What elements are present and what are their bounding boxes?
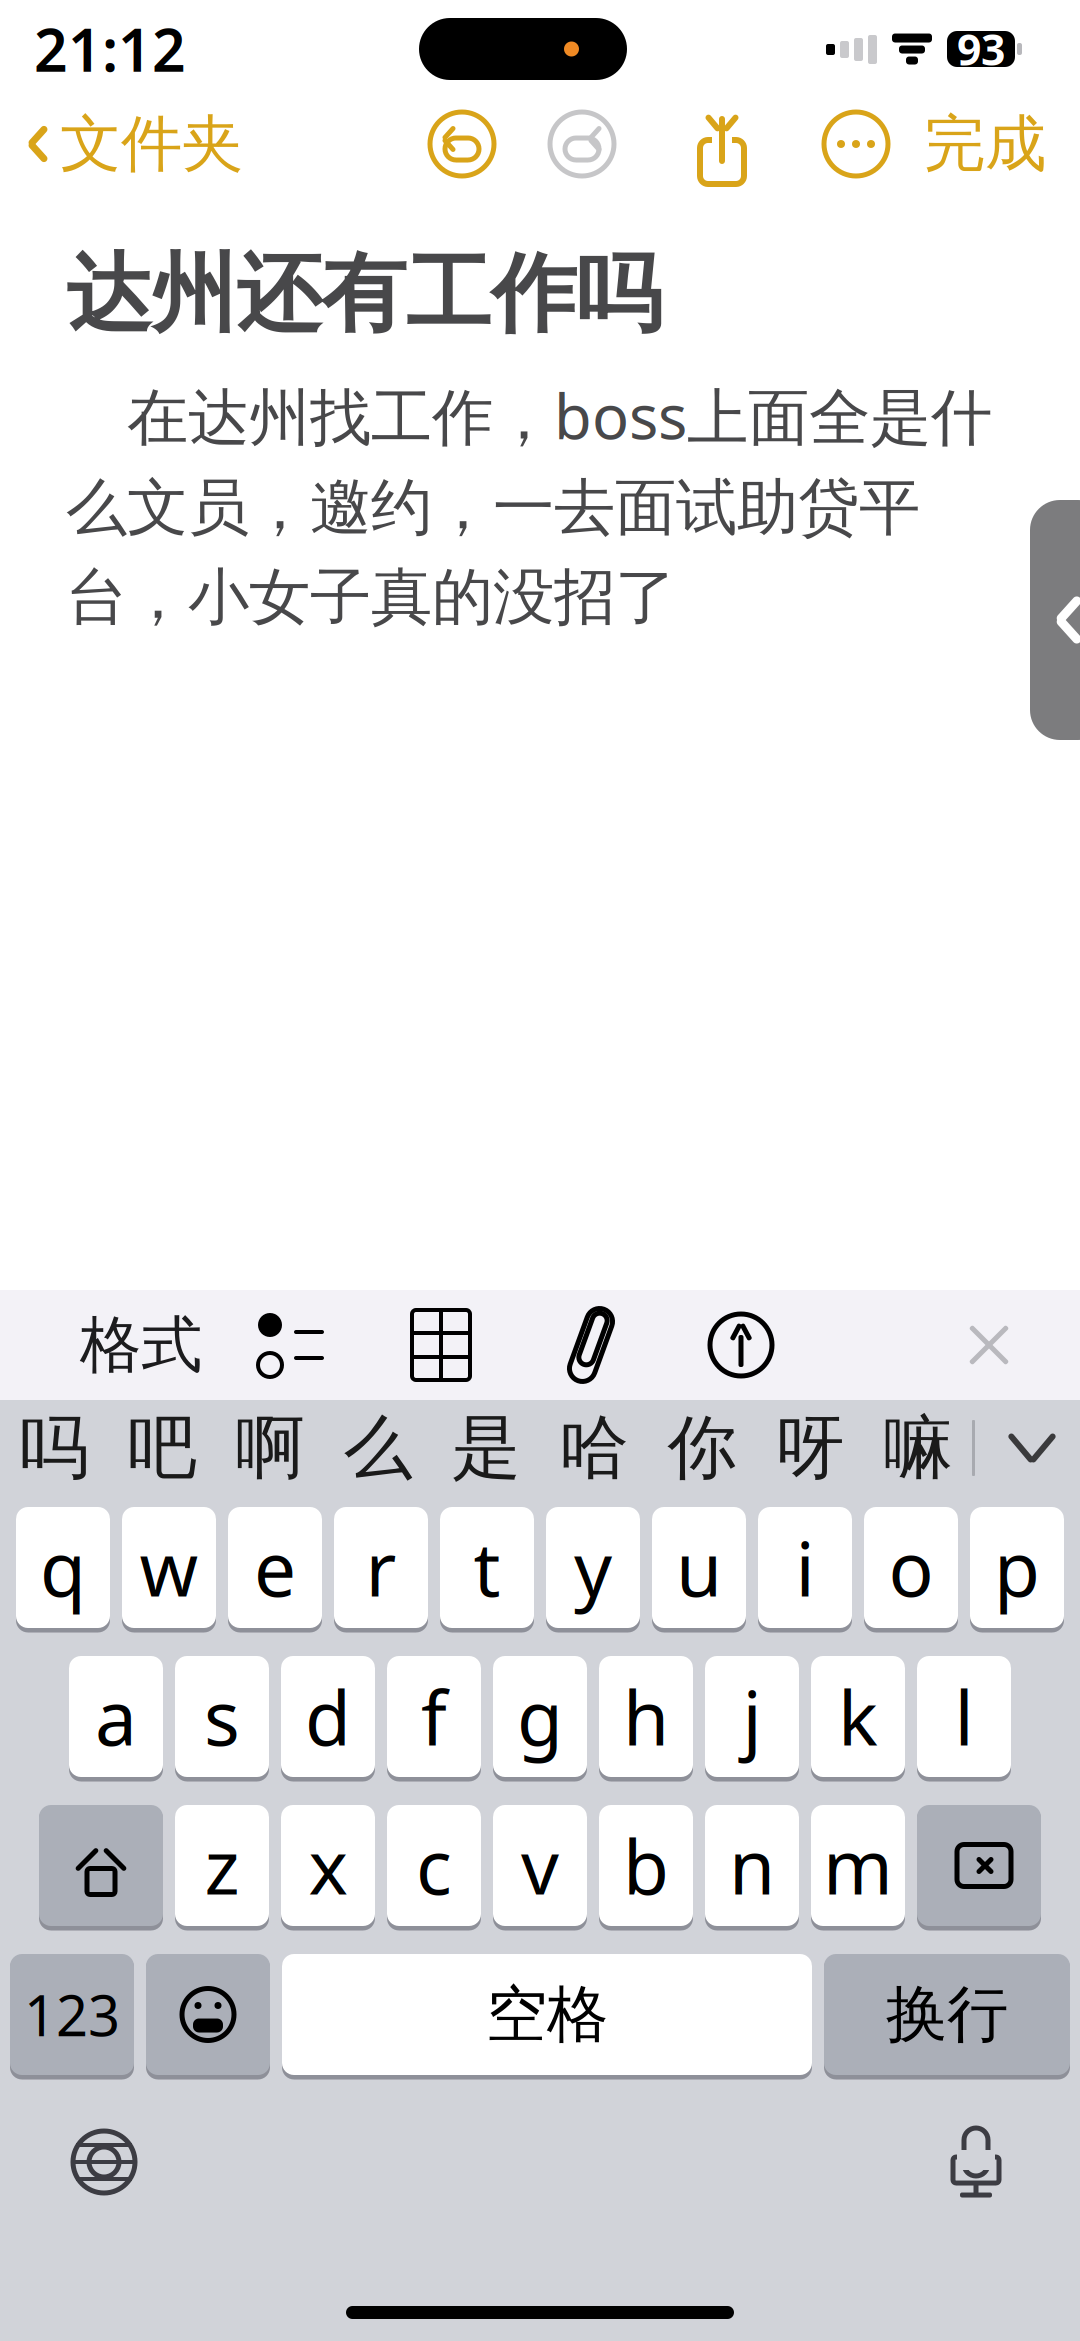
button[interactable]: 共享 — [676, 98, 768, 190]
staticText: 嘛 — [883, 1405, 952, 1491]
button[interactable]: 呀 — [756, 1400, 864, 1496]
button[interactable]: 文件夹 — [0, 94, 243, 194]
staticText: 完成 — [924, 106, 1046, 182]
staticText: m — [823, 1816, 893, 1915]
button[interactable]: 嘛 — [864, 1400, 972, 1496]
button[interactable]: q — [16, 1504, 110, 1631]
button[interactable]: 展开候选词 — [984, 1400, 1080, 1496]
staticText: 么 — [343, 1405, 412, 1491]
button[interactable]: z — [175, 1802, 269, 1929]
button[interactable]: i — [758, 1504, 852, 1631]
staticText: y — [574, 1518, 612, 1617]
button[interactable]: d — [281, 1653, 375, 1780]
button[interactable]: s — [175, 1653, 269, 1780]
button[interactable]: l — [917, 1653, 1011, 1780]
button[interactable]: x — [281, 1802, 375, 1929]
staticText: v — [521, 1816, 559, 1915]
button[interactable]: 清单 — [216, 1290, 366, 1400]
staticText: 换行 — [886, 1977, 1008, 2052]
staticText: j — [742, 1667, 761, 1766]
button[interactable]: 表情 — [146, 1951, 270, 2078]
button[interactable]: 你 — [648, 1400, 756, 1496]
staticText: d — [305, 1667, 351, 1766]
staticText: 空格 — [486, 1977, 608, 2052]
button[interactable]: 是 — [432, 1400, 540, 1496]
button[interactable]: 换行 — [824, 1951, 1070, 2078]
staticText: z — [204, 1816, 239, 1915]
staticText: 吗 — [19, 1405, 88, 1491]
button[interactable]: 空格 — [282, 1951, 812, 2078]
button[interactable]: c — [387, 1802, 481, 1929]
button[interactable]: 切换键盘 — [44, 2102, 164, 2222]
staticText: 93 — [957, 21, 1005, 77]
button[interactable]: k — [811, 1653, 905, 1780]
button[interactable]: 显示边栏 — [1030, 500, 1080, 740]
button[interactable]: 吧 — [108, 1400, 216, 1496]
staticText: o — [888, 1518, 933, 1617]
staticText: u — [676, 1518, 722, 1617]
staticText: x — [308, 1816, 347, 1915]
button[interactable]: o — [864, 1504, 958, 1631]
staticText: a — [95, 1667, 137, 1766]
button[interactable]: b — [599, 1802, 693, 1929]
button[interactable]: 哈 — [540, 1400, 648, 1496]
staticText: 在达州找工作，boss上面全是什么文员，邀约，一去面试助贷平台，小女子真的没招了 — [66, 375, 992, 635]
button[interactable]: 更多 — [810, 98, 902, 190]
button[interactable]: 附件 — [516, 1290, 666, 1400]
button[interactable]: h — [599, 1653, 693, 1780]
button[interactable]: v — [493, 1802, 587, 1929]
staticText: 123 — [24, 1977, 120, 2052]
button[interactable]: t — [440, 1504, 534, 1631]
button[interactable]: a — [69, 1653, 163, 1780]
staticText: 文件夹 — [60, 106, 243, 182]
staticText: k — [838, 1667, 878, 1766]
staticText: l — [954, 1667, 973, 1766]
staticText: b — [623, 1816, 669, 1915]
staticText: 啊 — [235, 1405, 304, 1491]
button[interactable]: y — [546, 1504, 640, 1631]
button[interactable]: j — [705, 1653, 799, 1780]
button[interactable]: p — [970, 1504, 1064, 1631]
staticText: r — [365, 1518, 396, 1617]
staticText: c — [416, 1816, 452, 1915]
staticText: 你 — [667, 1405, 736, 1491]
staticText: w — [139, 1518, 198, 1617]
button[interactable]: e — [228, 1504, 322, 1631]
staticText: 呀 — [775, 1405, 844, 1491]
staticText: i — [795, 1518, 814, 1617]
button[interactable]: n — [705, 1802, 799, 1929]
button[interactable]: 格式 — [66, 1290, 216, 1400]
staticText: h — [623, 1667, 669, 1766]
staticText: p — [994, 1518, 1040, 1617]
button[interactable]: Shift — [39, 1802, 163, 1929]
staticText: 哈 — [559, 1405, 628, 1491]
button[interactable]: r — [334, 1504, 428, 1631]
staticText: 格式 — [80, 1307, 202, 1383]
button[interactable]: 啊 — [216, 1400, 324, 1496]
staticText: t — [473, 1518, 500, 1617]
button[interactable]: 完成 — [924, 94, 1080, 194]
button[interactable]: g — [493, 1653, 587, 1780]
button[interactable]: w — [122, 1504, 216, 1631]
button[interactable]: u — [652, 1504, 746, 1631]
button[interactable]: 删除 — [917, 1802, 1041, 1929]
button[interactable]: 撤销 — [416, 98, 508, 190]
button[interactable]: m — [811, 1802, 905, 1929]
button[interactable]: f — [387, 1653, 481, 1780]
staticText: n — [729, 1816, 775, 1915]
button[interactable]: 标记 — [666, 1290, 816, 1400]
staticText: 是 — [451, 1405, 520, 1491]
button[interactable]: 123 — [10, 1951, 134, 2078]
button[interactable]: 么 — [324, 1400, 432, 1496]
button[interactable]: 重做 — [536, 98, 628, 190]
staticText: e — [254, 1518, 296, 1617]
button[interactable]: 吗 — [0, 1400, 108, 1496]
staticText: q — [40, 1518, 86, 1617]
staticText: g — [517, 1667, 563, 1766]
button[interactable]: 表格 — [366, 1290, 516, 1400]
staticText: 21:12 — [34, 10, 186, 88]
staticText: f — [421, 1667, 447, 1766]
button[interactable]: 语音输入 — [916, 2102, 1036, 2222]
staticText: 吧 — [127, 1405, 196, 1491]
button[interactable]: 关闭键盘 — [924, 1290, 1054, 1400]
